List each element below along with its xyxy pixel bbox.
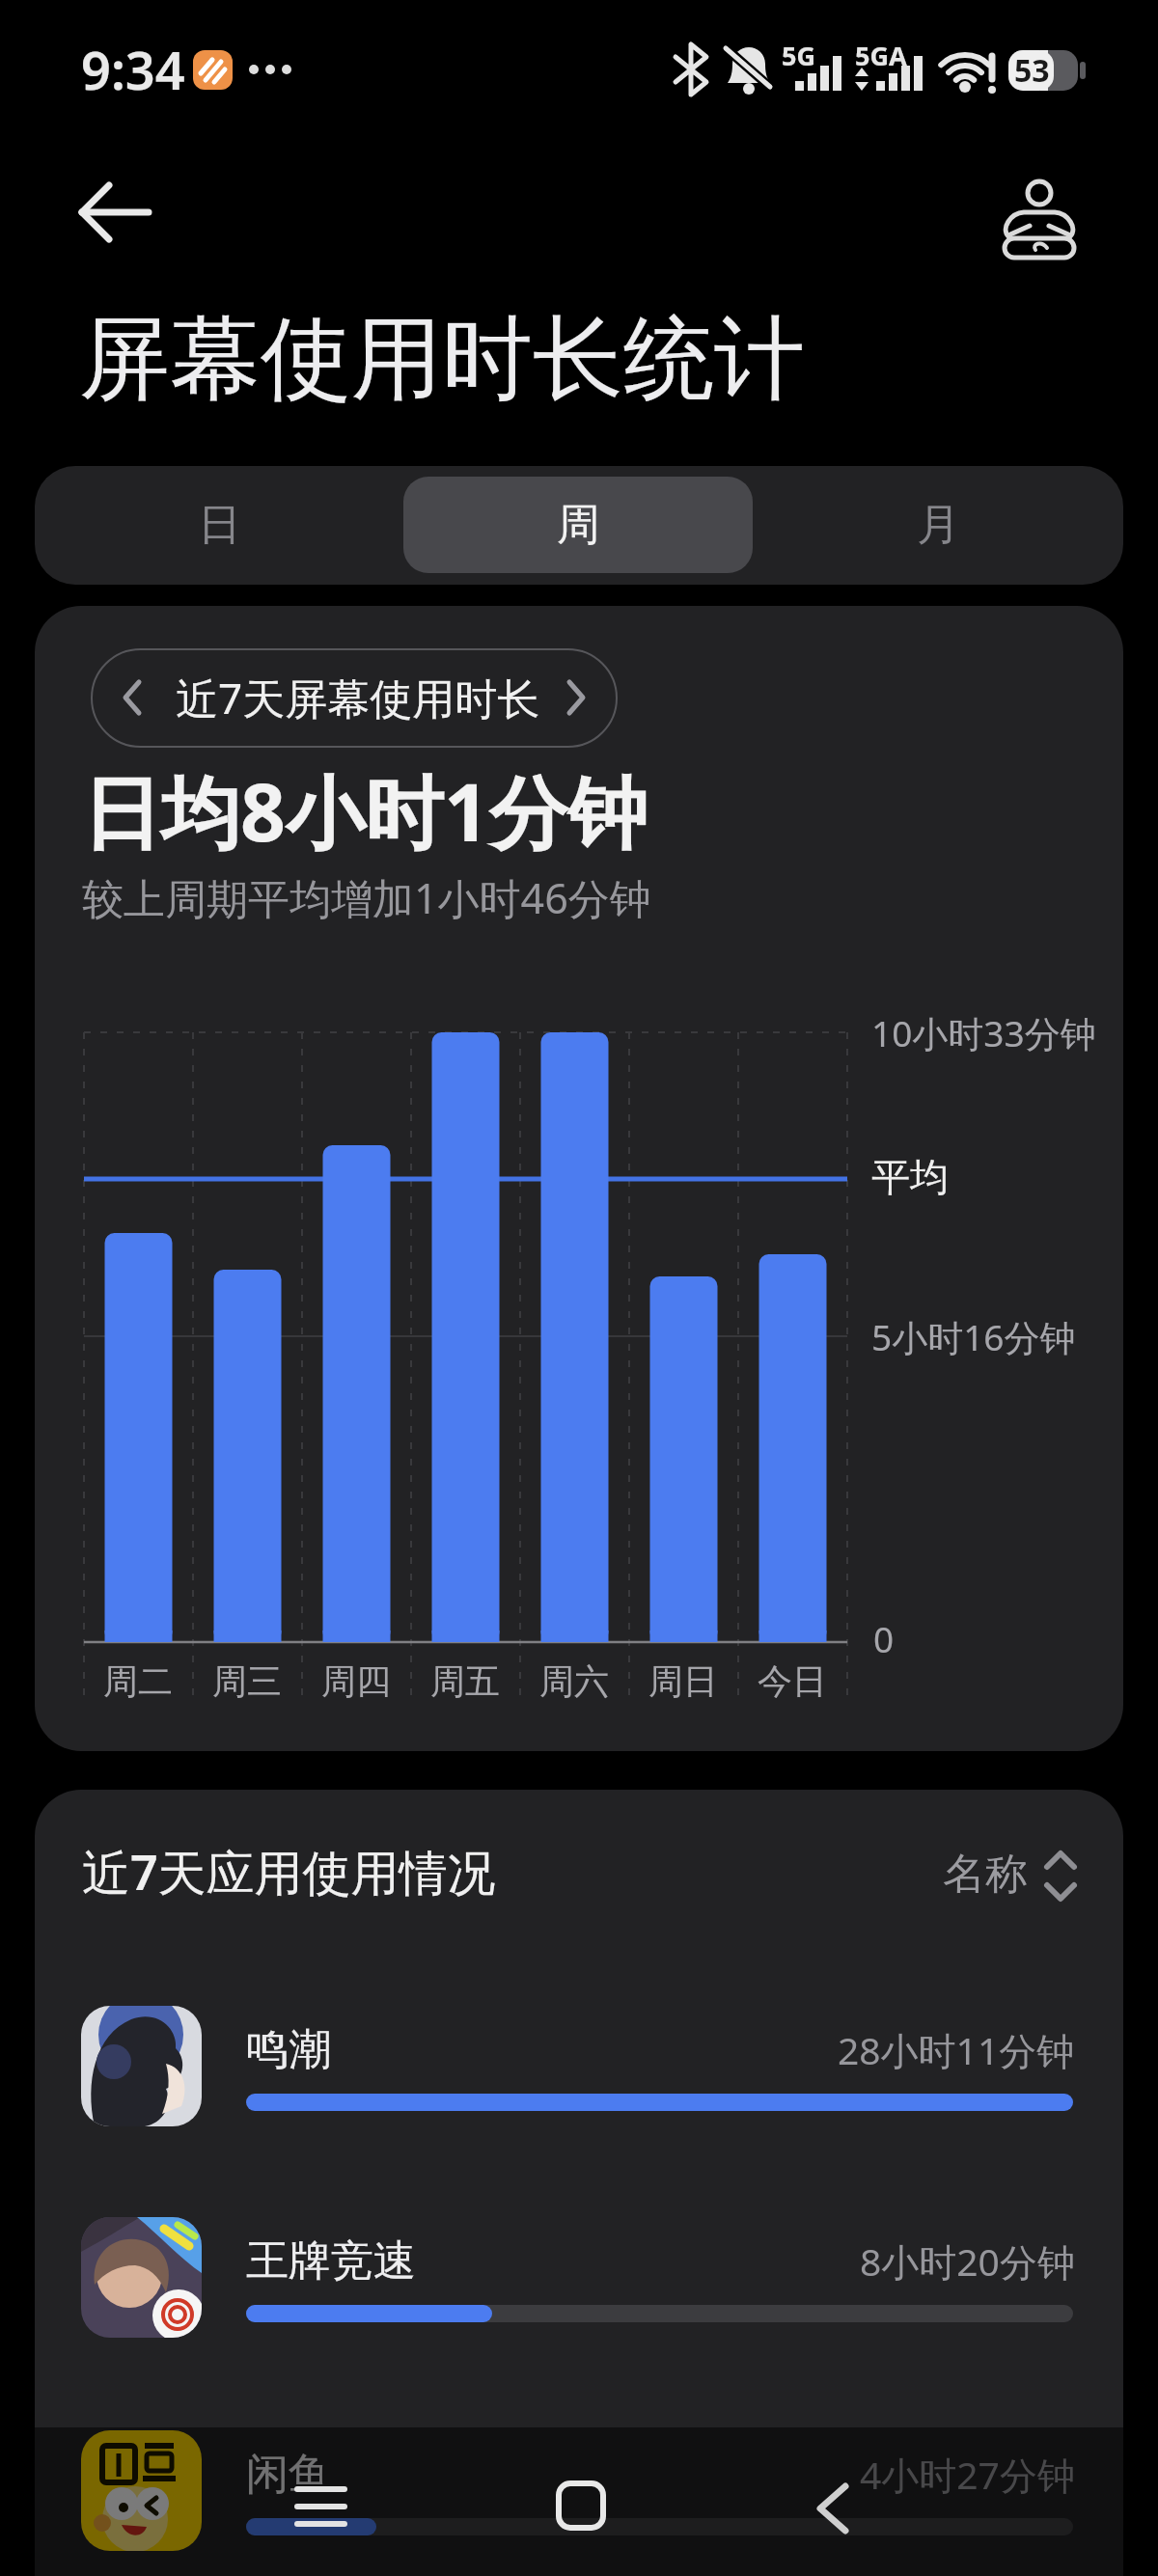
staticText: 日	[198, 498, 241, 553]
staticText: 0	[873, 1614, 895, 1662]
staticText: 闲鱼	[246, 2448, 331, 2501]
staticText: 鸣潮	[246, 2023, 331, 2076]
staticText: 5G	[782, 38, 815, 73]
staticText: 5GA	[855, 38, 907, 73]
button[interactable]	[58, 2006, 1100, 2199]
button[interactable]	[917, 1828, 1090, 1915]
staticText: 今日	[758, 1659, 827, 1703]
staticText: 近7天应用使用情况	[82, 1839, 496, 1905]
button[interactable]	[58, 2430, 1100, 2576]
staticText: 屏幕使用时长统计	[79, 302, 805, 416]
button[interactable]	[35, 466, 403, 585]
staticText: 53	[1014, 49, 1050, 92]
staticText: 名称	[943, 1848, 1028, 1901]
button[interactable]	[278, 2470, 365, 2547]
staticText: 周日	[648, 1659, 718, 1703]
staticText: 近7天屏幕使用时长	[176, 669, 540, 726]
staticText: 周五	[430, 1659, 500, 1703]
button[interactable]	[58, 2217, 1100, 2410]
staticText: 平均	[871, 1153, 949, 1201]
staticText: 周六	[539, 1659, 609, 1703]
button[interactable]	[991, 169, 1088, 265]
staticText: 9:34	[81, 34, 185, 105]
staticText: 5小时16分钟	[871, 1312, 1076, 1361]
staticText: 月	[917, 498, 960, 553]
button[interactable]	[58, 172, 174, 259]
staticText: 28小时11分钟	[838, 2024, 1075, 2075]
staticText: 王牌竞速	[246, 2234, 416, 2288]
staticText: 日均8小时1分钟	[82, 756, 648, 864]
button[interactable]	[403, 477, 753, 573]
staticText: 10小时33分钟	[871, 1008, 1096, 1057]
button[interactable]	[791, 2465, 878, 2547]
staticText: 周	[557, 498, 600, 553]
button[interactable]	[538, 2465, 624, 2547]
button[interactable]	[91, 648, 618, 748]
staticText: 较上周期平均增加1小时46分钟	[82, 869, 651, 926]
staticText: 周四	[321, 1659, 391, 1703]
staticText: 4小时27分钟	[860, 2449, 1075, 2500]
button[interactable]	[753, 466, 1123, 585]
staticText: 8小时20分钟	[860, 2235, 1075, 2287]
staticText: 周二	[103, 1659, 173, 1703]
staticText: 周三	[212, 1659, 282, 1703]
